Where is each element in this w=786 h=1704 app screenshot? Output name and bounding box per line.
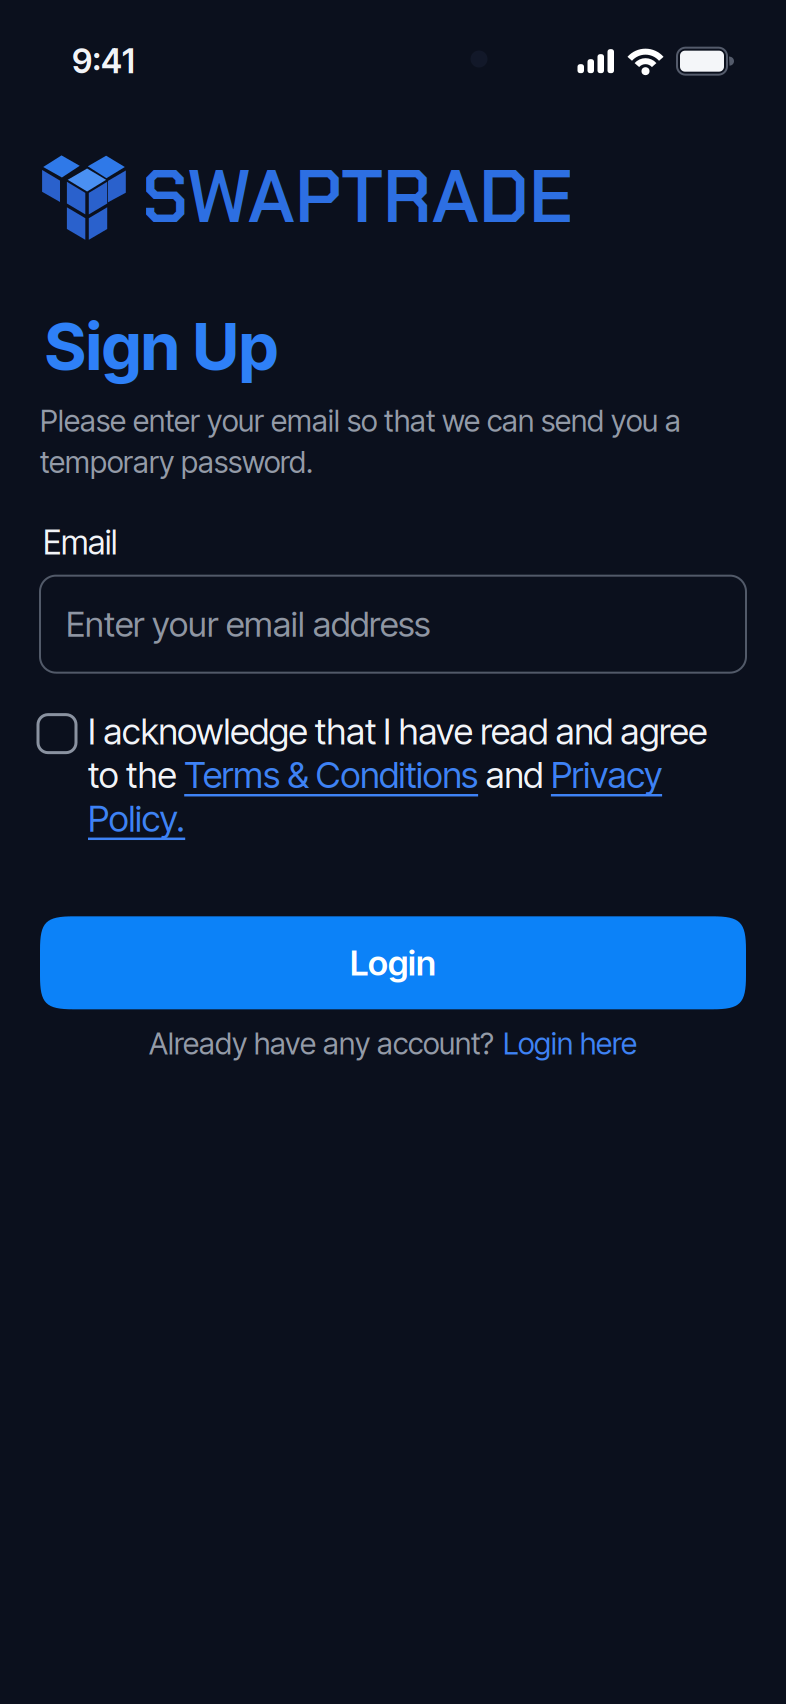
staticText: Sign Up bbox=[45, 307, 278, 386]
staticText: to the bbox=[88, 753, 184, 797]
staticText: Policy. bbox=[88, 797, 185, 840]
button[interactable]: Policy. bbox=[88, 797, 185, 840]
staticText: 9:41 bbox=[72, 41, 135, 81]
staticText: Already have any account? bbox=[149, 1025, 494, 1062]
staticText: Terms & Conditions bbox=[184, 753, 478, 797]
button[interactable]: Enter your email address bbox=[40, 576, 746, 673]
staticText: Privacy bbox=[551, 753, 662, 797]
button[interactable]: Privacy bbox=[551, 753, 662, 797]
staticText: I acknowledge that I have read and agree bbox=[88, 710, 707, 753]
staticText: SWAPTRADE bbox=[142, 149, 573, 245]
staticText: Email bbox=[43, 522, 117, 563]
staticText: Please enter your email so that we can s… bbox=[40, 403, 681, 439]
staticText: Enter your email address bbox=[66, 603, 430, 645]
staticText: and bbox=[478, 753, 551, 797]
button[interactable]: Login here bbox=[503, 1025, 637, 1062]
staticText: Login bbox=[350, 942, 436, 984]
staticText: temporary password. bbox=[40, 444, 313, 480]
button[interactable]: Terms & Conditions bbox=[184, 753, 478, 797]
button[interactable]: Login bbox=[40, 916, 746, 1009]
staticText: Login here bbox=[503, 1025, 637, 1062]
button[interactable]: I acknowledge that I have read and agree… bbox=[38, 715, 76, 753]
